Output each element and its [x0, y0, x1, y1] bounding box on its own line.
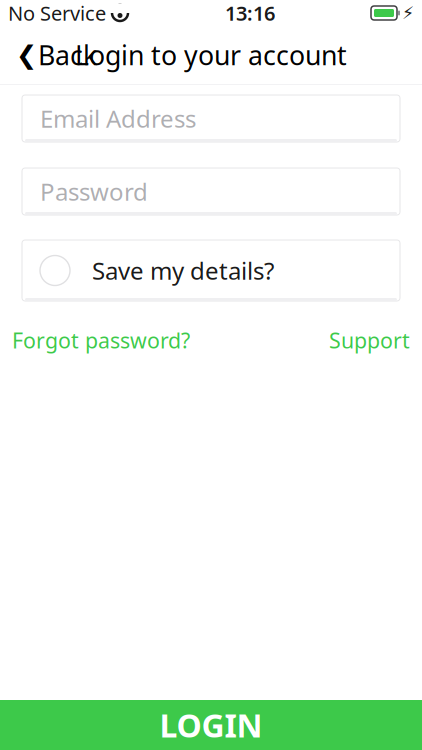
- staticText: 13:16: [225, 0, 275, 26]
- button[interactable]: Forgot password?: [12, 326, 190, 354]
- button[interactable]: Password: [22, 168, 400, 215]
- staticText: No Service: [8, 0, 106, 26]
- button[interactable]: LOGIN: [0, 700, 422, 750]
- button[interactable]: Save my details?: [22, 240, 400, 301]
- staticText: Forgot password?: [12, 326, 190, 354]
- staticText: Password: [40, 176, 148, 207]
- staticText: ⚡︎: [402, 3, 414, 23]
- staticText: LOGIN: [159, 704, 262, 746]
- button[interactable]: ❮: [0, 33, 113, 77]
- staticText: Save my details?: [92, 255, 274, 286]
- button[interactable]: Support: [329, 326, 410, 354]
- staticText: Login to your account: [75, 37, 347, 73]
- staticText: Email Address: [40, 103, 196, 134]
- button[interactable]: Email Address: [22, 95, 400, 142]
- staticText: ❮: [16, 41, 37, 69]
- staticText: Support: [329, 326, 410, 354]
- staticText: Back: [38, 37, 97, 73]
